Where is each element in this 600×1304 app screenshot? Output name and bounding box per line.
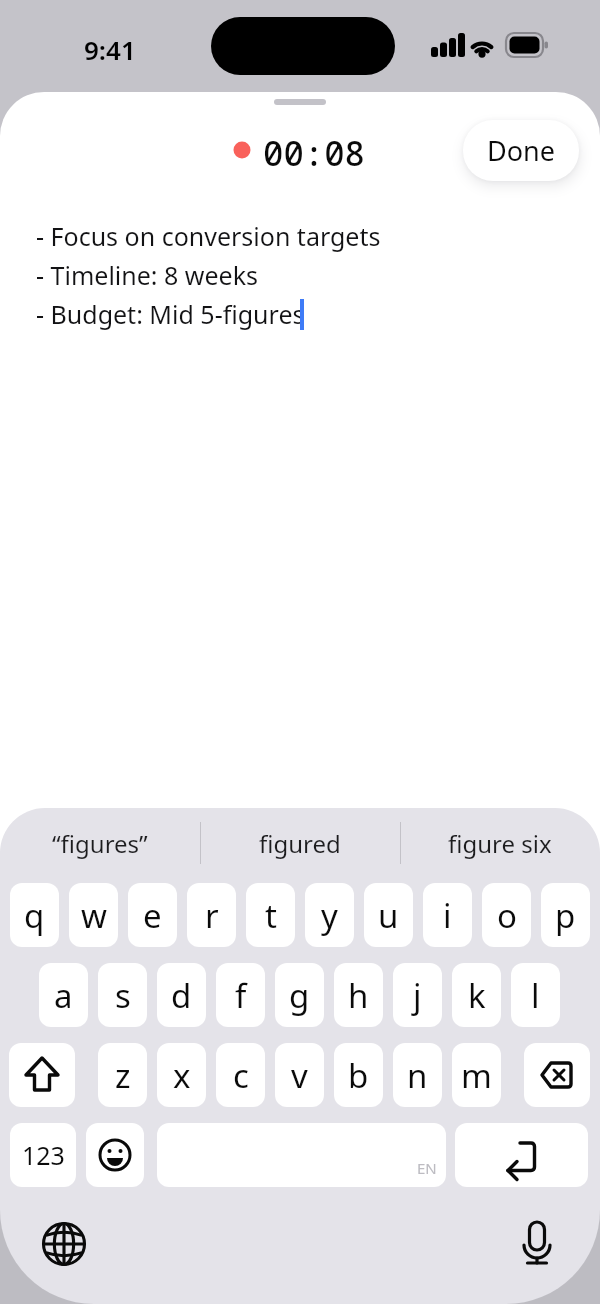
button[interactable]: j [393, 963, 442, 1027]
button[interactable]: v [275, 1043, 324, 1107]
staticText: EN [417, 1158, 437, 1178]
staticText: w [81, 893, 107, 938]
staticText: 00:08 [263, 130, 365, 176]
staticText: h [348, 973, 369, 1018]
button[interactable]: q [10, 883, 59, 947]
button[interactable] [86, 1123, 144, 1187]
staticText: 123 [22, 1138, 65, 1172]
staticText: n [407, 1053, 428, 1098]
button[interactable] [507, 1215, 567, 1275]
button[interactable]: figured [205, 820, 395, 866]
staticText: e [143, 893, 162, 938]
button[interactable] [524, 1043, 590, 1107]
staticText: figure six [448, 827, 552, 860]
button[interactable]: d [157, 963, 206, 1027]
button[interactable]: c [216, 1043, 265, 1107]
button[interactable]: m [452, 1043, 501, 1107]
staticText: b [348, 1053, 369, 1098]
button[interactable]: b [334, 1043, 383, 1107]
button[interactable]: p [541, 883, 590, 947]
button[interactable]: t [246, 883, 295, 947]
staticText: “figures” [52, 827, 148, 860]
button[interactable]: g [275, 963, 324, 1027]
button[interactable]: figure six [405, 820, 595, 866]
staticText: a [54, 973, 73, 1018]
button[interactable]: f [216, 963, 265, 1027]
staticText: r [205, 893, 219, 938]
button[interactable] [35, 1215, 95, 1275]
staticText: - Timeline: 8 weeks [36, 258, 259, 292]
button[interactable] [9, 1043, 75, 1107]
staticText: f [235, 973, 247, 1018]
staticText: m [461, 1053, 492, 1098]
staticText: x [173, 1053, 191, 1098]
staticText: Done [487, 132, 555, 169]
staticText: v [291, 1053, 308, 1098]
staticText: o [497, 893, 517, 938]
button[interactable]: x [157, 1043, 206, 1107]
button[interactable]: o [482, 883, 531, 947]
button[interactable]: k [452, 963, 501, 1027]
button[interactable]: u [364, 883, 413, 947]
button[interactable]: n [393, 1043, 442, 1107]
button[interactable]: h [334, 963, 383, 1027]
staticText: q [24, 893, 45, 938]
staticText: figured [259, 827, 341, 860]
button[interactable]: w [69, 883, 118, 947]
staticText: y [321, 893, 338, 938]
staticText: 9:41 [84, 32, 136, 67]
staticText: u [378, 893, 399, 938]
button[interactable]: z [98, 1043, 147, 1107]
button[interactable]: y [305, 883, 354, 947]
staticText: t [265, 893, 277, 938]
button[interactable]: e [128, 883, 177, 947]
button[interactable]: i [423, 883, 472, 947]
button[interactable]: “figures” [5, 820, 195, 866]
button[interactable]: a [39, 963, 88, 1027]
staticText: d [171, 973, 192, 1018]
button[interactable]: s [98, 963, 147, 1027]
staticText: g [289, 973, 310, 1018]
staticText: i [443, 893, 452, 938]
staticText: p [555, 893, 576, 938]
staticText: - Budget: Mid 5-figures [36, 297, 305, 331]
button[interactable] [455, 1123, 588, 1187]
staticText: c [233, 1053, 249, 1098]
staticText: z [115, 1053, 131, 1098]
staticText: s [115, 973, 131, 1018]
button[interactable]: Done [463, 120, 579, 181]
staticText: - Focus on conversion targets [36, 219, 381, 253]
button[interactable] [157, 1123, 446, 1187]
button[interactable]: r [187, 883, 236, 947]
button[interactable]: 123 [10, 1123, 76, 1187]
staticText: l [531, 973, 540, 1018]
staticText: j [413, 973, 422, 1018]
button[interactable]: l [511, 963, 560, 1027]
staticText: k [468, 973, 486, 1018]
